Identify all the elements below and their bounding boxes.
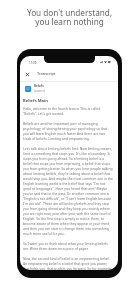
button[interactable]: Beliefs xyxy=(25,84,45,93)
staticText: 11:30 xyxy=(29,61,37,65)
staticText: Let's talk about limiting beliefs first.… xyxy=(23,146,113,236)
staticText: Transcript xyxy=(37,71,56,76)
staticText: So I want you to think about what your l… xyxy=(23,241,113,251)
staticText: Now, the second kind of belief is an emp… xyxy=(23,256,113,270)
staticText: Beliefs Main xyxy=(23,98,48,104)
staticText: Beliefs xyxy=(34,84,44,88)
button[interactable]: Close xyxy=(24,71,31,78)
staticText: Hello, welcome to the fourth lesson. Thi… xyxy=(23,106,113,116)
staticText: Lesson 4 xyxy=(34,89,45,93)
staticText: Beliefs are another important part of ma… xyxy=(23,121,113,141)
staticText: You don't understand, you learn nothing xyxy=(0,7,139,28)
